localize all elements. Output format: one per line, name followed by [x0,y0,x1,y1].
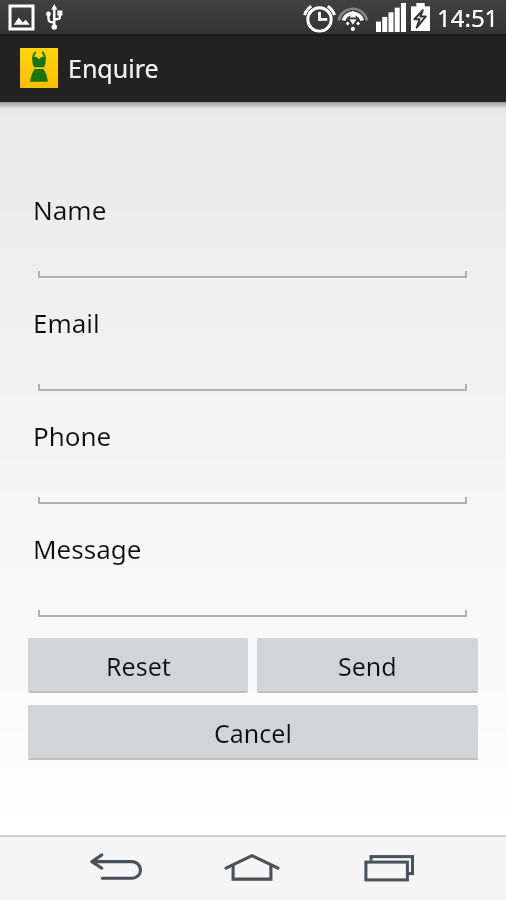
staticText: Name [33,192,107,227]
staticText: Cancel [214,716,292,750]
button[interactable]: Cancel [28,705,478,760]
button[interactable]: Recents [346,837,432,900]
button[interactable]: Send [257,638,478,693]
button[interactable]: Reset [28,638,248,693]
staticText: Message [33,531,142,566]
staticText: Email [33,305,100,340]
button[interactable]: Message [0,531,506,635]
button[interactable]: Name [0,192,506,305]
staticText: Phone [33,418,112,453]
button[interactable]: Back [73,837,159,900]
button[interactable]: Email [0,305,506,418]
staticText: Enquire [68,51,159,85]
button[interactable]: Phone [0,418,506,531]
button[interactable]: Home [209,837,295,900]
staticText: Send [338,649,397,683]
staticText: Reset [106,649,171,683]
staticText: 14:51 [437,1,499,34]
